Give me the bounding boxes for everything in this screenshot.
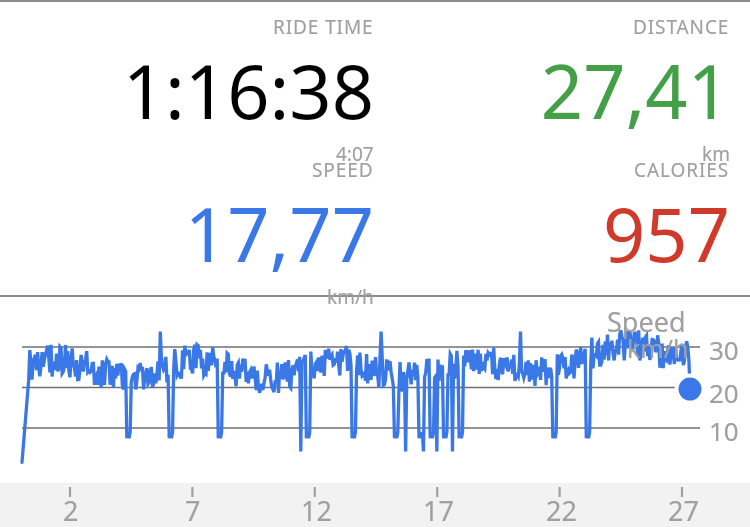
staticText: 27: [668, 492, 699, 527]
staticText: 4:07: [336, 141, 374, 167]
staticText: SPEED: [312, 157, 374, 183]
staticText: 17,77: [184, 183, 374, 284]
staticText: 10: [709, 413, 739, 448]
staticText: 27,41: [540, 40, 730, 141]
staticText: km/h: [627, 331, 689, 365]
staticText: CALORIES: [634, 157, 730, 183]
staticText: 20: [709, 375, 739, 410]
staticText: 17: [423, 492, 454, 527]
staticText: 1:16:38: [122, 40, 374, 141]
staticText: 2: [63, 492, 79, 527]
staticText: 12: [301, 492, 332, 527]
staticText: DISTANCE: [633, 14, 730, 40]
staticText: 30: [709, 332, 739, 367]
button[interactable]: DISTANCE: [362, 14, 730, 167]
button[interactable]: SPEED: [6, 157, 374, 310]
staticText: 22: [546, 492, 577, 527]
staticText: km: [702, 141, 730, 167]
staticText: Speed: [607, 303, 686, 340]
staticText: 957: [603, 183, 730, 284]
staticText: km/h: [327, 284, 374, 310]
button[interactable]: RIDE TIME: [6, 14, 374, 167]
staticText: RIDE TIME: [273, 14, 374, 40]
staticText: 7: [185, 492, 201, 527]
button[interactable]: CALORIES: [362, 157, 730, 284]
